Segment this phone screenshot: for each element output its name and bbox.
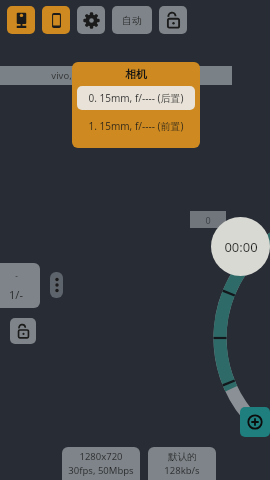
button[interactable]: 默认的 [148, 447, 216, 480]
staticText: 128kb/s [164, 464, 200, 477]
staticText: 1280x720 [79, 450, 123, 463]
button[interactable]: 00:00 [211, 217, 270, 276]
staticText: 30fps, 50Mbps [68, 464, 134, 477]
staticText: 1/- [9, 287, 23, 302]
staticText: 00:00 [224, 238, 258, 256]
staticText: 0. 15mm, f/---- (后置) [88, 91, 184, 105]
button[interactable]: Settings [77, 6, 105, 34]
button[interactable]: 相机 [77, 66, 195, 82]
staticText: - [15, 270, 18, 281]
staticText: 相机 [125, 67, 147, 81]
button[interactable]: 0 [190, 211, 226, 228]
button[interactable]: 1280x720 [62, 447, 140, 480]
button[interactable]: Add [240, 407, 270, 437]
button[interactable]: 自动 [112, 6, 152, 34]
button[interactable]: Photo mode [7, 6, 35, 34]
staticText: 1. 15mm, f/---- (前置) [88, 119, 184, 133]
staticText: vivo, v1824a, Camera2, 17fps [51, 69, 181, 82]
staticText: 默认的 [168, 451, 197, 463]
button[interactable]: Unlock [159, 6, 187, 34]
button[interactable]: 1. 15mm, f/---- (前置) [77, 114, 195, 138]
staticText: 自动 [122, 14, 142, 27]
button[interactable]: Unlock exposure [10, 318, 36, 344]
staticText: 0 [205, 214, 211, 226]
button[interactable]: - [0, 263, 40, 308]
button[interactable]: 0. 15mm, f/---- (后置) [77, 86, 195, 110]
button[interactable]: Front camera [42, 6, 70, 34]
button[interactable]: More options [50, 272, 63, 298]
